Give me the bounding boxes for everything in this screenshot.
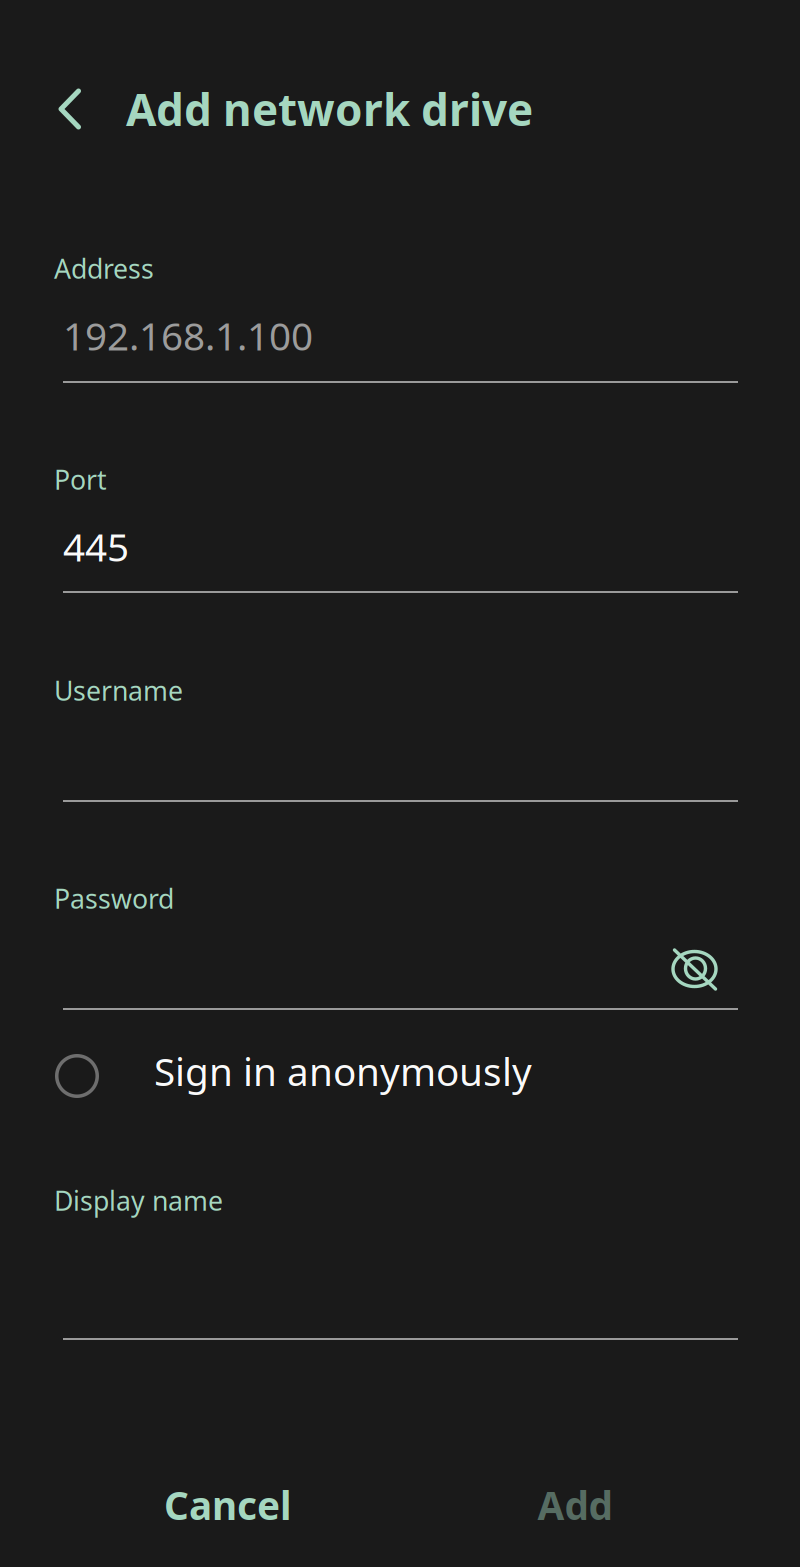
staticText: Cancel — [164, 1479, 292, 1531]
staticText: Sign in anonymously — [154, 1045, 532, 1097]
staticText: Display name — [54, 1183, 223, 1218]
button[interactable]: Back — [47, 81, 92, 137]
staticText: Password — [54, 881, 174, 916]
button[interactable]: Add — [475, 1472, 675, 1538]
staticText: Port — [54, 462, 107, 497]
button[interactable]: Port — [63, 521, 738, 572]
button[interactable]: Show password — [671, 940, 719, 991]
staticText: Add — [537, 1479, 612, 1531]
staticText: Add network drive — [126, 80, 533, 138]
staticText: 192.168.1.100 — [63, 310, 313, 361]
button[interactable]: Address — [63, 310, 738, 361]
staticText: 445 — [63, 521, 129, 572]
staticText: Username — [54, 673, 183, 708]
staticText: Address — [54, 251, 154, 286]
button[interactable]: Cancel — [128, 1472, 328, 1538]
button[interactable]: Sign in anonymously — [0, 1044, 745, 1098]
